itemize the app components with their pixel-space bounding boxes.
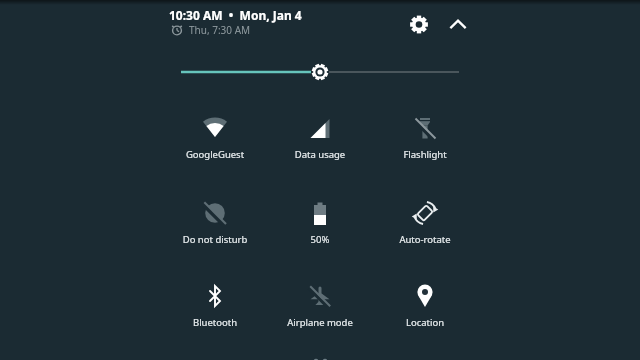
staticText: Flashlight	[373, 148, 477, 161]
button[interactable]	[446, 12, 470, 36]
button[interactable]: Airplane mode	[268, 280, 372, 334]
button[interactable]	[172, 58, 468, 86]
button[interactable]	[407, 12, 431, 36]
staticText: GoogleGuest	[163, 148, 267, 161]
button[interactable]: Location	[373, 280, 477, 334]
button[interactable]: Auto-rotate	[373, 197, 477, 251]
staticText: Data usage	[268, 148, 372, 161]
button[interactable]: Bluetooth	[163, 280, 267, 334]
staticText: Do not disturb	[163, 233, 267, 246]
staticText: 10:30 AM • Mon, Jan 4	[169, 7, 302, 23]
button[interactable]: GoogleGuest	[163, 112, 267, 166]
button[interactable]: Do not disturb	[163, 197, 267, 251]
button[interactable]: Flashlight	[373, 112, 477, 166]
button[interactable]: Data usage	[268, 112, 372, 166]
staticText: 50%	[268, 233, 372, 246]
staticText: Bluetooth	[163, 316, 267, 329]
button[interactable]: 50%	[268, 197, 372, 251]
staticText: Auto-rotate	[373, 233, 477, 246]
staticText: Location	[373, 316, 477, 329]
staticText: Thu, 7:30 AM	[189, 23, 251, 37]
staticText: Airplane mode	[268, 316, 372, 329]
